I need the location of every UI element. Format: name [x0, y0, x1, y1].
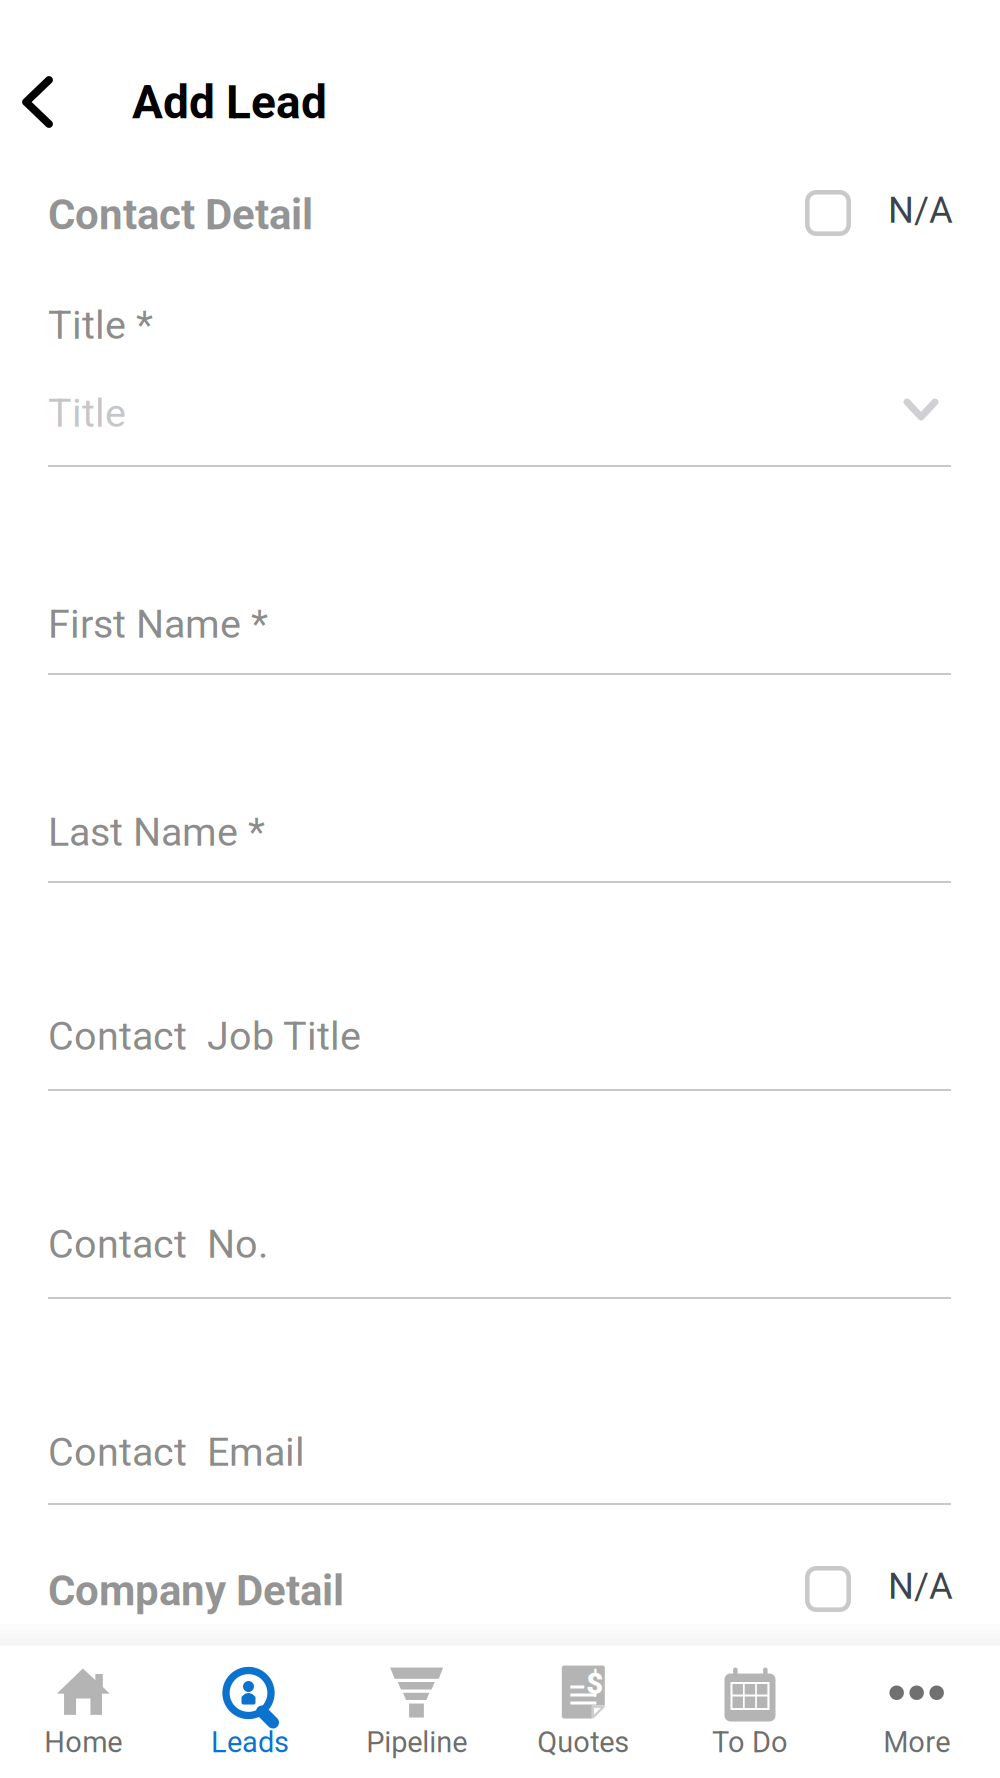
staticText: Contact Email — [48, 1429, 305, 1475]
button[interactable]: Back — [0, 51, 96, 151]
staticText: More — [883, 1725, 950, 1759]
staticText: Add Lead — [132, 76, 327, 129]
staticText: Title — [48, 390, 126, 436]
button[interactable]: Select title — [881, 380, 961, 440]
staticText: Contact Job Title — [48, 1013, 361, 1059]
button[interactable]: $ — [500, 1645, 667, 1778]
button[interactable]: N/A — [804, 1559, 952, 1619]
staticText: Last Name * — [48, 809, 265, 855]
staticText: Home — [44, 1725, 122, 1759]
button[interactable]: To Do — [667, 1645, 833, 1778]
staticText: N/A — [888, 189, 953, 232]
staticText: Quotes — [537, 1725, 629, 1759]
staticText: N/A — [888, 1565, 953, 1608]
button[interactable]: N/A — [804, 183, 952, 243]
staticText: First Name * — [48, 601, 268, 647]
button[interactable]: More — [833, 1645, 1000, 1778]
button[interactable]: Leads — [167, 1645, 333, 1778]
button[interactable]: Home — [0, 1645, 167, 1778]
staticText: Title * — [48, 302, 153, 348]
staticText: Contact No. — [48, 1221, 268, 1267]
staticText: To Do — [712, 1725, 788, 1759]
button[interactable]: Pipeline — [333, 1645, 500, 1778]
staticText: $ — [586, 1666, 603, 1701]
staticText: Leads — [211, 1725, 289, 1759]
staticText: Company Detail — [48, 1566, 344, 1615]
staticText: Pipeline — [366, 1725, 467, 1759]
staticText: Contact Detail — [48, 190, 313, 239]
